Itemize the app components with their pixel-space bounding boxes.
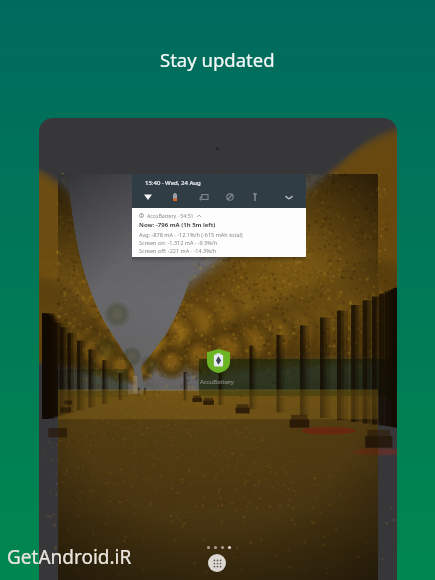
button[interactable]: Auto rotate <box>220 187 240 207</box>
staticText: Screen on: -1,312 mA · -9.5%/h <box>139 239 218 246</box>
button[interactable]: All apps <box>208 554 226 572</box>
staticText: Screen off: -221 mA · -14.3%/h <box>139 247 217 254</box>
staticText: Now: -796 mA (1h 5m left) <box>139 221 216 229</box>
staticText: AccuBattery <box>200 378 234 386</box>
button[interactable]: Expand <box>279 187 299 207</box>
button[interactable]: Flashlight <box>245 187 265 207</box>
staticText: AccuBattery · 54:51 <box>147 212 194 219</box>
button[interactable]: Wi-Fi <box>138 187 158 207</box>
staticText: 15:40 · Wed, 24 Aug <box>145 179 201 187</box>
staticText: Stay updated <box>160 47 275 72</box>
button[interactable]: Battery <box>165 187 185 207</box>
staticText: GetAndroid.iR <box>7 544 132 570</box>
button[interactable]: Cast <box>194 187 214 207</box>
staticText: Avg: -878 mA · -12.1%/h (-615 mAh total) <box>139 231 243 238</box>
